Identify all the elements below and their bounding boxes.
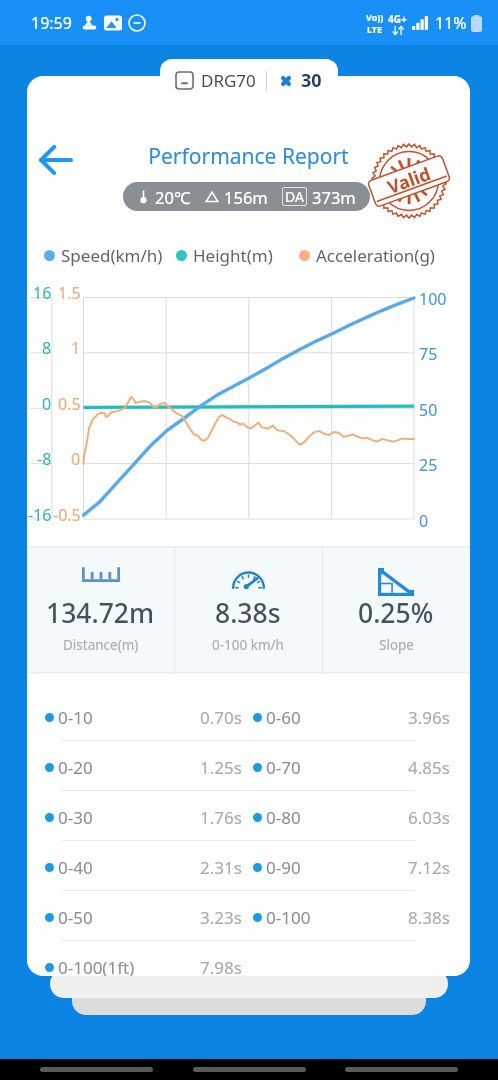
button[interactable]: 0-10 xyxy=(45,692,242,742)
button[interactable]: 8.38s xyxy=(174,547,322,673)
staticText: 0-100 km/h xyxy=(212,636,284,654)
staticText: 0.25% xyxy=(358,595,434,631)
staticText: LTE xyxy=(367,23,383,35)
button[interactable]: 0-30 xyxy=(45,792,242,842)
staticText: Height(m) xyxy=(193,244,273,267)
staticText: -0.5 xyxy=(53,504,81,526)
staticText: 1.25s xyxy=(200,756,242,779)
staticText: 0-80 xyxy=(266,806,301,829)
staticText: 6.03s xyxy=(408,806,450,829)
staticText: 0-70 xyxy=(266,756,301,779)
button[interactable]: DRG70 xyxy=(160,59,338,102)
staticText: 19:59 xyxy=(31,12,72,34)
staticText: 0 xyxy=(419,510,429,532)
staticText: 4G+ xyxy=(388,12,407,26)
staticText: 100 xyxy=(419,288,447,310)
button[interactable]: 0-40 xyxy=(45,842,242,892)
staticText: -16 xyxy=(28,504,52,526)
staticText: 3.23s xyxy=(200,906,242,929)
button[interactable]: 0-70 xyxy=(253,742,450,792)
staticText: 8 xyxy=(42,337,52,359)
button[interactable]: Back xyxy=(33,137,79,183)
staticText: Performance Report xyxy=(27,142,470,171)
staticText: 0-60 xyxy=(266,706,301,729)
staticText: 156m xyxy=(224,186,268,208)
staticText: Slope xyxy=(379,636,414,654)
button[interactable]: 0-90 xyxy=(253,842,450,892)
staticText: Speed(km/h) xyxy=(61,244,163,267)
button[interactable]: 134.72m xyxy=(27,547,174,673)
staticText: 25 xyxy=(419,454,438,476)
button[interactable]: 0-60 xyxy=(253,692,450,742)
staticText: 50 xyxy=(419,399,438,421)
staticText: 7.12s xyxy=(408,856,450,879)
staticText: 7.98s xyxy=(200,956,242,976)
staticText: Valid xyxy=(384,161,435,200)
staticText: DRG70 xyxy=(201,69,256,92)
button[interactable]: 0-50 xyxy=(45,892,242,942)
button[interactable]: 0.25% xyxy=(322,547,470,673)
staticText: 0.70s xyxy=(200,706,242,729)
staticText: 0-10 xyxy=(58,706,93,729)
staticText: 16 xyxy=(33,282,52,304)
staticText: 0 xyxy=(42,393,52,415)
staticText: 0-50 xyxy=(58,906,93,929)
staticText: 3.96s xyxy=(408,706,450,729)
staticText: 373m xyxy=(312,186,356,208)
staticText: Vo)) xyxy=(366,11,384,23)
staticText: -8 xyxy=(37,448,52,470)
button[interactable]: 0-20 xyxy=(45,742,242,792)
button[interactable]: Navigation xyxy=(193,1067,306,1072)
staticText: 11% xyxy=(435,12,467,34)
staticText: 134.72m xyxy=(46,595,155,631)
button[interactable]: 0-100(1ft) xyxy=(45,942,242,976)
staticText: 0.5 xyxy=(58,393,81,415)
staticText: 1.5 xyxy=(58,282,81,304)
staticText: 0-100(1ft) xyxy=(58,956,135,976)
staticText: 75 xyxy=(419,343,438,365)
staticText: 0-100 xyxy=(266,906,311,929)
staticText: 0 xyxy=(71,448,81,470)
staticText: 0-30 xyxy=(58,806,93,829)
button[interactable]: 0-100 xyxy=(253,892,450,942)
staticText: 0-40 xyxy=(58,856,93,879)
staticText: 0-20 xyxy=(58,756,93,779)
staticText: 2.31s xyxy=(200,856,242,879)
staticText: Acceleration(g) xyxy=(316,244,435,267)
staticText: 8.38s xyxy=(215,595,281,631)
staticText: 4.85s xyxy=(408,756,450,779)
staticText: Distance(m) xyxy=(63,636,139,654)
staticText: 30 xyxy=(301,68,322,93)
button[interactable]: 0-80 xyxy=(253,792,450,842)
staticText: 8.38s xyxy=(408,906,450,929)
staticText: 20℃ xyxy=(155,186,191,208)
button[interactable]: Navigation xyxy=(40,1067,153,1072)
staticText: DA xyxy=(285,187,304,206)
staticText: 1.76s xyxy=(200,806,242,829)
staticText: 1 xyxy=(71,337,81,359)
staticText: 0-90 xyxy=(266,856,301,879)
button[interactable]: Navigation xyxy=(345,1067,458,1072)
